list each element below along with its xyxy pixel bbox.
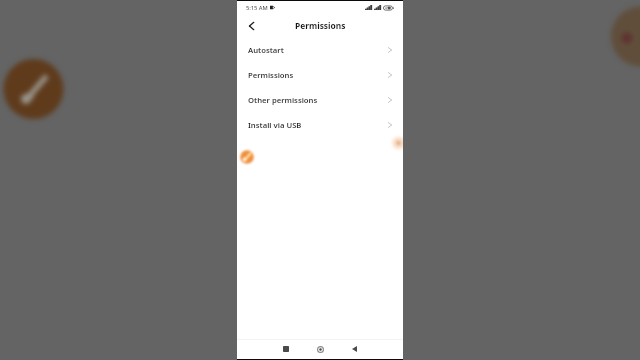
button[interactable]: Install via USB bbox=[237, 112, 403, 137]
staticText: Other permissions bbox=[248, 95, 318, 105]
staticText: Install via USB bbox=[248, 120, 302, 130]
button[interactable]: New drawing bbox=[237, 147, 257, 167]
button[interactable]: Permissions bbox=[237, 62, 403, 87]
staticText: Permissions bbox=[248, 70, 294, 80]
button[interactable]: Other permissions bbox=[237, 87, 403, 112]
staticText: 5:15 AM bbox=[246, 4, 268, 12]
button[interactable]: Autostart bbox=[237, 37, 403, 62]
staticText: Permissions bbox=[295, 20, 346, 31]
button[interactable]: Recent apps bbox=[279, 342, 293, 356]
button[interactable]: Back bbox=[347, 342, 361, 356]
button[interactable]: Home bbox=[313, 342, 327, 356]
staticText: Autostart bbox=[248, 45, 284, 55]
button[interactable]: Back bbox=[244, 19, 258, 33]
